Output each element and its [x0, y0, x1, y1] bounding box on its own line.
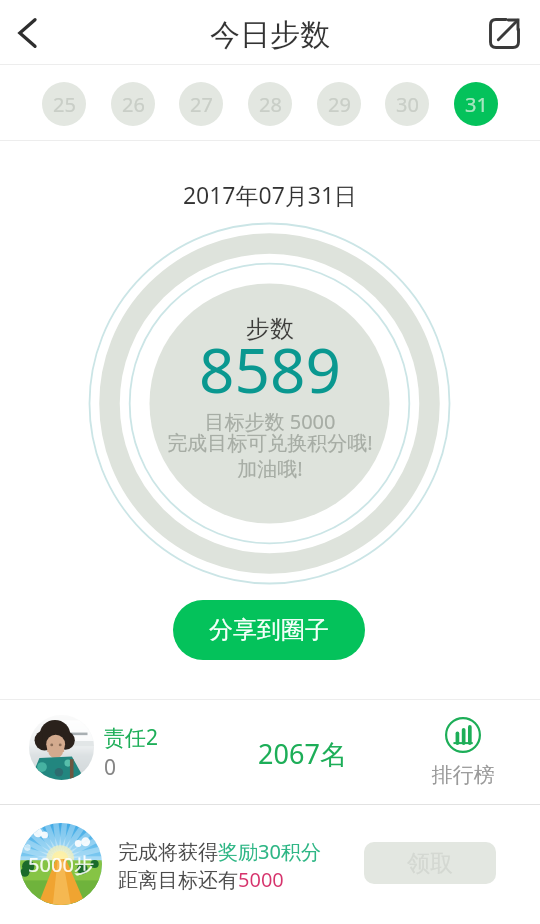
staticText: 26: [122, 91, 145, 118]
staticText: 步数: [0, 314, 540, 344]
button[interactable]: 28: [248, 82, 292, 126]
button[interactable]: 排行榜: [418, 705, 508, 800]
staticText: 0: [104, 753, 117, 782]
button[interactable]: 25: [42, 82, 86, 126]
staticText: 距离目标还有5000: [118, 866, 284, 893]
button[interactable]: 领取: [364, 842, 496, 884]
staticText: 2017年07月31日: [0, 179, 540, 210]
staticText: 完成目标可兑换积分哦!: [0, 429, 540, 456]
staticText: 2067名: [240, 735, 365, 772]
button[interactable]: 5000步: [20, 823, 102, 905]
staticText: 28: [259, 91, 282, 118]
button[interactable]: 29: [317, 82, 361, 126]
staticText: 今日步数: [0, 16, 540, 54]
button[interactable]: 30: [385, 82, 429, 126]
staticText: 25: [53, 91, 76, 118]
staticText: 31: [465, 91, 488, 118]
staticText: 领取: [407, 849, 453, 878]
staticText: 目标步数 5000: [0, 408, 540, 435]
staticText: 30: [396, 91, 419, 118]
button[interactable]: 27: [179, 82, 223, 126]
staticText: 分享到圈子: [209, 615, 329, 645]
staticText: 29: [328, 91, 351, 118]
staticText: 完成将获得奖励30积分: [118, 838, 321, 865]
button[interactable]: 31: [454, 82, 498, 126]
button[interactable]: [29, 715, 94, 780]
staticText: 排行榜: [418, 762, 508, 788]
button[interactable]: 26: [111, 82, 155, 126]
staticText: 5000步: [20, 851, 102, 878]
staticText: 8589: [0, 327, 540, 411]
button[interactable]: Back: [0, 0, 62, 65]
staticText: 加油哦!: [0, 455, 540, 482]
button[interactable]: 分享到圈子: [173, 600, 365, 660]
button[interactable]: Share: [478, 0, 540, 65]
staticText: 27: [190, 91, 213, 118]
staticText: 责任2: [104, 723, 159, 752]
